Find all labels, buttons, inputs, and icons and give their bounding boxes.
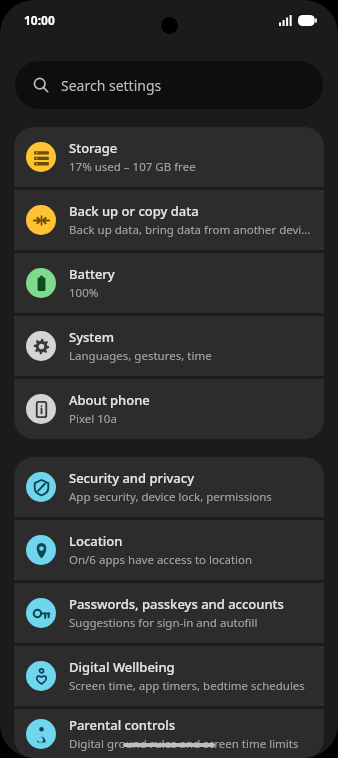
button[interactable]: Back up or copy data: [14, 190, 324, 250]
button[interactable]: Security and privacy: [14, 457, 324, 517]
staticText: Digital Wellbeing: [69, 658, 175, 676]
staticText: About phone: [69, 391, 150, 409]
staticText: Back up or copy data: [69, 202, 199, 220]
button[interactable]: Battery: [14, 253, 324, 313]
button[interactable]: Parental controls: [14, 709, 324, 758]
staticText: Screen time, app timers, bedtime schedul…: [69, 678, 305, 694]
staticText: On/6 apps have access to location: [69, 552, 253, 568]
button[interactable]: System: [14, 316, 324, 376]
staticText: Back up data, bring data from another de…: [69, 222, 312, 238]
button[interactable]: Location: [14, 520, 324, 580]
staticText: Search settings: [61, 76, 162, 95]
staticText: Suggestions for sign-in and autofill: [69, 615, 258, 631]
button[interactable]: About phone: [14, 379, 324, 439]
button[interactable]: Storage: [14, 127, 324, 187]
staticText: Passwords, passkeys and accounts: [69, 595, 284, 613]
button[interactable]: Digital Wellbeing: [14, 646, 324, 706]
staticText: Security and privacy: [69, 469, 195, 487]
staticText: App security, device lock, permissions: [69, 489, 272, 505]
staticText: Storage: [69, 139, 118, 157]
staticText: 17% used – 107 GB free: [69, 159, 196, 175]
staticText: 100%: [69, 285, 99, 301]
staticText: System: [69, 328, 115, 346]
staticText: Digital ground rules and screen time lim…: [69, 736, 299, 752]
staticText: Battery: [69, 265, 115, 283]
button[interactable]: Passwords, passkeys and accounts: [14, 583, 324, 643]
staticText: Pixel 10a: [69, 411, 117, 427]
staticText: Parental controls: [69, 716, 175, 734]
staticText: Languages, gestures, time: [69, 348, 212, 364]
staticText: Location: [69, 532, 123, 550]
staticText: 10:00: [24, 12, 55, 28]
button[interactable]: Search settings: [15, 61, 323, 109]
